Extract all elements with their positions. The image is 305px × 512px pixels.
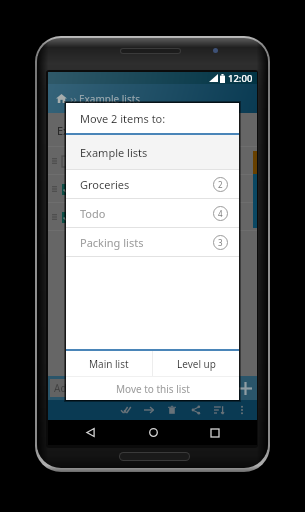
staticText: Add item [54,381,97,395]
button[interactable]: Todo [48,175,257,203]
staticText: Todo [80,206,106,221]
staticText: ›› [70,91,77,106]
other: Home [56,93,67,104]
button[interactable]: Sort [209,400,229,420]
staticText: Level up [177,357,216,371]
staticText: 2 [218,179,223,190]
button[interactable]: Example lists [66,135,239,170]
staticText: Example lists [80,145,148,160]
button[interactable]: Home [48,84,257,113]
button[interactable]: Main list [66,351,152,376]
other: Add [239,382,252,395]
staticText: 12:00 [228,72,253,84]
staticText: Move to this list [116,382,190,396]
button[interactable]: Add item [48,376,257,400]
staticText: Groceries [80,177,130,192]
button[interactable]: Groceries [48,147,257,175]
staticText: Example lists [79,92,141,106]
staticText: Example lists [57,123,125,138]
button[interactable]: Mark all done [116,400,136,420]
staticText: 4 [218,208,223,219]
button[interactable]: Share [186,400,206,420]
staticText: Packing lists [77,210,141,225]
button[interactable]: Todo [66,199,239,228]
button[interactable]: Recent apps [195,420,235,445]
button[interactable]: More options [232,400,252,420]
button[interactable]: Packing lists [48,203,257,231]
staticText: Groceries [77,154,127,169]
button[interactable]: Move to this list [66,377,239,400]
button[interactable]: Packing lists [66,228,239,257]
button[interactable]: Home [133,420,173,445]
staticText: Move 2 items to: [80,111,166,126]
button[interactable]: Groceries [66,170,239,199]
button[interactable]: Delete [162,400,182,420]
staticText: Packing lists [80,235,144,250]
staticText: Main list [89,357,129,371]
button[interactable]: Move [139,400,159,420]
button[interactable]: Back [70,420,110,445]
button[interactable]: Level up [153,351,239,376]
staticText: Todo [77,182,103,197]
staticText: 3 [218,237,223,248]
